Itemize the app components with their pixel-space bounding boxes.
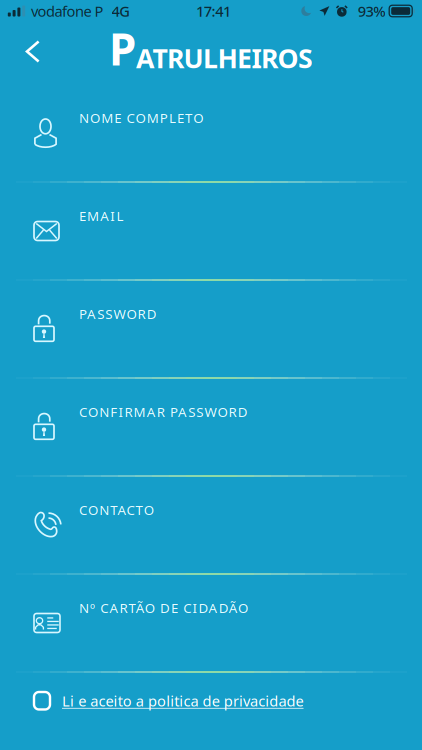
staticText: vodafone P (31, 1, 103, 21)
button[interactable]: Li e aceito a politica de privacidade (0, 673, 422, 750)
staticText: 17:41 (196, 1, 231, 21)
button[interactable]: Back (9, 29, 57, 77)
staticText: PASSWORD (79, 305, 157, 323)
staticText: Nº CARTÃO DE CIDADÃO (79, 599, 248, 617)
button[interactable]: Nº CARTÃO DE CIDADÃO (0, 575, 422, 671)
staticText: CONFIRMAR PASSWORD (79, 403, 248, 421)
button[interactable]: EMAIL (0, 183, 422, 279)
button[interactable]: CONFIRMAR PASSWORD (0, 379, 422, 475)
staticText: EMAIL (79, 207, 123, 225)
button[interactable]: CONTACTO (0, 477, 422, 573)
staticText: 4G (111, 1, 130, 21)
staticText: ATRULHEIROS (136, 40, 313, 76)
staticText: Li e aceito a politica de privacidade (62, 691, 303, 710)
staticText: CONTACTO (79, 501, 154, 519)
staticText: P (109, 19, 136, 78)
button[interactable]: PASSWORD (0, 281, 422, 377)
staticText: 93% (358, 1, 385, 21)
button[interactable]: NOME COMPLETO (0, 85, 422, 181)
staticText: NOME COMPLETO (79, 109, 203, 127)
